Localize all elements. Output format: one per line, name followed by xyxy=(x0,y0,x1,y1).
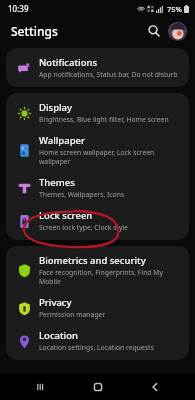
button[interactable]: Search xyxy=(143,20,165,42)
button[interactable]: Display xyxy=(6,96,189,129)
button[interactable]: Recents xyxy=(23,374,57,400)
staticText: App notifications, Status bar, Do not di… xyxy=(39,70,178,79)
button[interactable]: Privacy xyxy=(6,291,189,324)
staticText: Face recognition, Fingerprints, Find My … xyxy=(39,268,181,286)
staticText: Brightness, Blue light filter, Home scre… xyxy=(39,115,169,124)
button[interactable]: Account xyxy=(168,22,187,41)
staticText: Location xyxy=(39,329,78,342)
staticText: Permission manager xyxy=(39,310,106,319)
staticText: Location settings, Location requests xyxy=(39,343,154,352)
staticText: Privacy xyxy=(39,296,72,309)
staticText: 75% xyxy=(167,4,182,14)
staticText: Screen lock type, Clock style xyxy=(39,223,128,232)
staticText: Home screen wallpaper, Lock screen wallp… xyxy=(39,148,181,166)
staticText: 10:39 xyxy=(8,3,29,14)
button[interactable]: Wallpaper xyxy=(6,129,189,171)
staticText: Notifications xyxy=(39,56,98,69)
staticText: Biometrics and security xyxy=(39,254,146,267)
staticText: Wallpaper xyxy=(39,134,85,147)
staticText: Lock screen xyxy=(39,209,93,222)
staticText: Display xyxy=(39,101,73,114)
staticText: Settings xyxy=(11,23,58,39)
button[interactable]: Lock screen xyxy=(6,204,189,237)
button[interactable]: Location xyxy=(6,324,189,357)
button[interactable]: Themes xyxy=(6,171,189,204)
button[interactable]: Home xyxy=(81,374,115,400)
button[interactable]: Biometrics and security xyxy=(6,249,189,291)
button[interactable]: Notifications xyxy=(6,51,189,84)
button[interactable]: Back xyxy=(138,374,172,400)
staticText: Themes xyxy=(39,176,75,189)
staticText: Themes, Wallpapers, Icons xyxy=(39,190,125,199)
